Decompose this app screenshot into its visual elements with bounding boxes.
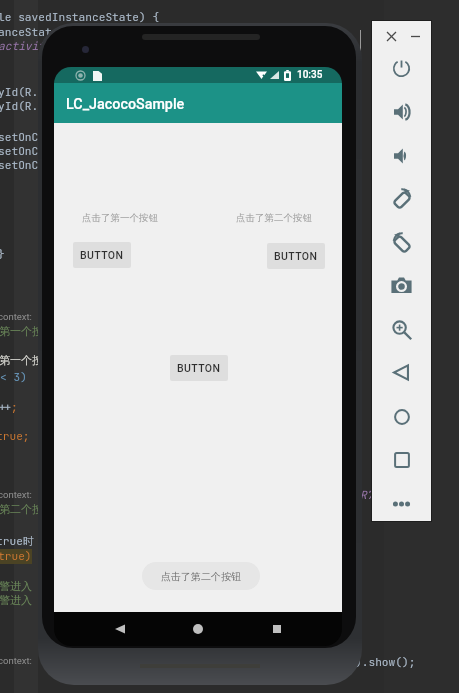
staticText: 点击了第二个按钮 [236, 212, 312, 224]
staticText: yId(R.id.button1); [0, 85, 119, 100]
button[interactable]: Zoom [386, 314, 417, 345]
button[interactable]: Rotate right [386, 227, 417, 258]
staticText: 点击了第二个按钮 [161, 570, 241, 583]
staticText: true; [0, 429, 30, 444]
button[interactable]: Home [386, 401, 417, 432]
button[interactable]: Volume up [386, 96, 417, 127]
staticText: true时 [0, 534, 35, 549]
staticText: 第二个按钮 [0, 502, 54, 516]
staticText: BUTTON [80, 249, 124, 261]
button[interactable]: Recents [262, 612, 292, 646]
button[interactable]: Back [105, 612, 135, 646]
staticText: 10:35 [297, 69, 323, 81]
staticText: context: [0, 489, 32, 500]
button[interactable]: Volume down [386, 140, 417, 171]
button[interactable]: Close [382, 27, 400, 45]
staticText: setOnClickListener(this); [0, 144, 166, 159]
staticText: 警进入 [0, 593, 32, 607]
button[interactable]: Home [183, 612, 213, 646]
button[interactable]: BUTTON [73, 242, 131, 268]
staticText: BUTTON [177, 362, 221, 374]
staticText: setOnClickListener(this); [0, 130, 166, 145]
staticText: 第一个按钮 [0, 324, 54, 338]
button[interactable]: Screenshot [386, 270, 417, 301]
button[interactable]: BUTTON [170, 355, 228, 381]
staticText: le savedInstanceState) { [0, 10, 160, 25]
button[interactable]: Rotate left [386, 183, 417, 214]
staticText: yId(R.id.button2); [0, 99, 119, 114]
staticText: ).show(); [355, 655, 416, 670]
button[interactable]: BUTTON [267, 243, 325, 269]
staticText: setOnClickListener(this); [0, 158, 166, 173]
staticText: context: [0, 311, 32, 322]
staticText: ++ [0, 400, 12, 415]
staticText: R7 [360, 488, 374, 503]
button[interactable]: More [386, 488, 417, 519]
staticText: LC_JacocoSample [66, 96, 185, 113]
staticText: 警进入 [0, 579, 32, 593]
staticText: } [0, 247, 5, 262]
staticText: context: [0, 655, 32, 666]
staticText: BUTTON [274, 250, 318, 262]
button[interactable]: Minimize [406, 27, 424, 45]
staticText: ; [11, 400, 18, 415]
staticText: anceState); [0, 25, 72, 40]
staticText: 第一个按钮 [0, 353, 54, 367]
staticText: activity_main); [0, 39, 99, 54]
staticText: true) [0, 549, 32, 564]
button[interactable]: Back [386, 357, 417, 388]
button[interactable]: Power [386, 53, 417, 84]
staticText: 点击了第一个按钮 [82, 212, 158, 224]
staticText: < 3) [0, 370, 27, 385]
button[interactable]: Overview [386, 444, 417, 475]
